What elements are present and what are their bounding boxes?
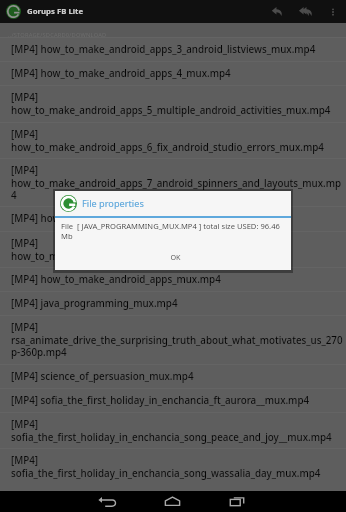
staticText: OK	[170, 252, 181, 262]
button[interactable]: Recent apps	[204, 491, 269, 512]
staticText: [MP4] science_of_persuasion_mux.mp4	[11, 370, 346, 383]
button[interactable]: Undo	[262, 0, 292, 23]
button[interactable]: More options	[322, 0, 344, 23]
staticText: [MP4] sofia_the_first_holiday_in_enchanc…	[11, 418, 346, 443]
staticText: ../STORAGE/SDCARD0/DOWNLOAD	[8, 31, 107, 37]
button[interactable]: [MP4] how_to_make_android_apps_8_mux.mp4	[0, 206, 346, 230]
button[interactable]: Redo	[292, 0, 322, 23]
button[interactable]: [MP4] science_of_persuasion_mux.mp4	[0, 364, 346, 388]
button[interactable]: [MP4] how_to_make_android_apps_mux.mp4	[0, 267, 346, 291]
button[interactable]: [MP4] how_to_make_android_apps_9_mux.mp4	[0, 231, 346, 267]
staticText: File properties	[82, 197, 144, 210]
staticText: [MP4] rsa_animate_drive_the_surprising_t…	[11, 321, 346, 358]
staticText: File [ JAVA_PROGRAMMING_MUX.MP4 ] total …	[61, 221, 282, 241]
button[interactable]: [MP4] sofia_the_first_holiday_in_enchanc…	[0, 448, 346, 484]
staticText: [MP4] java_programming_mux.mp4	[11, 297, 346, 310]
staticText: [MP4] how_to_make_android_apps_mux.mp4	[11, 273, 346, 286]
button[interactable]: Home	[140, 491, 205, 512]
staticText: [MP4] how_to_make_android_apps_3_android…	[11, 43, 346, 56]
button[interactable]: [MP4] how_to_make_android_apps_6_fix_and…	[0, 122, 346, 158]
button[interactable]: OK	[55, 249, 291, 270]
staticText: [MP4] sofia_the_first_holiday_in_enchanc…	[11, 454, 346, 479]
button[interactable]: [MP4] rsa_animate_drive_the_surprising_t…	[0, 315, 346, 364]
button[interactable]: [MP4] how_to_make_android_apps_3_android…	[0, 37, 346, 61]
staticText: [MP4] how_to_make_android_apps_5_multipl…	[11, 91, 346, 116]
staticText: [MP4] how_to_make_android_apps_4_mux.mp4	[11, 67, 346, 80]
button[interactable]: [MP4] java_programming_mux.mp4	[0, 291, 346, 315]
button[interactable]: [MP4] how_to_make_android_apps_5_multipl…	[0, 85, 346, 121]
button[interactable]: [MP4] how_to_make_android_apps_7_android…	[0, 158, 346, 207]
button[interactable]: [MP4] sofia_the_first_holiday_in_enchanc…	[0, 412, 346, 448]
staticText: [MP4] how_to_make_android_apps_7_android…	[11, 164, 346, 201]
staticText: [MP4] sofia_the_first_holiday_in_enchanc…	[11, 394, 346, 407]
button[interactable]: [MP4] how_to_make_android_apps_4_mux.mp4	[0, 61, 346, 85]
staticText: [MP4] how_to_make_android_apps_6_fix_and…	[11, 128, 346, 153]
staticText: [MP4] how_to_make_android_apps_9_mux.mp4	[11, 237, 346, 262]
button[interactable]: Back	[75, 491, 140, 512]
staticText: [MP4] how_to_make_android_apps_8_mux.mp4	[11, 212, 346, 225]
button[interactable]: [MP4] sofia_the_first_holiday_in_enchanc…	[0, 388, 346, 412]
staticText: Gorups FB Lite	[27, 6, 84, 17]
